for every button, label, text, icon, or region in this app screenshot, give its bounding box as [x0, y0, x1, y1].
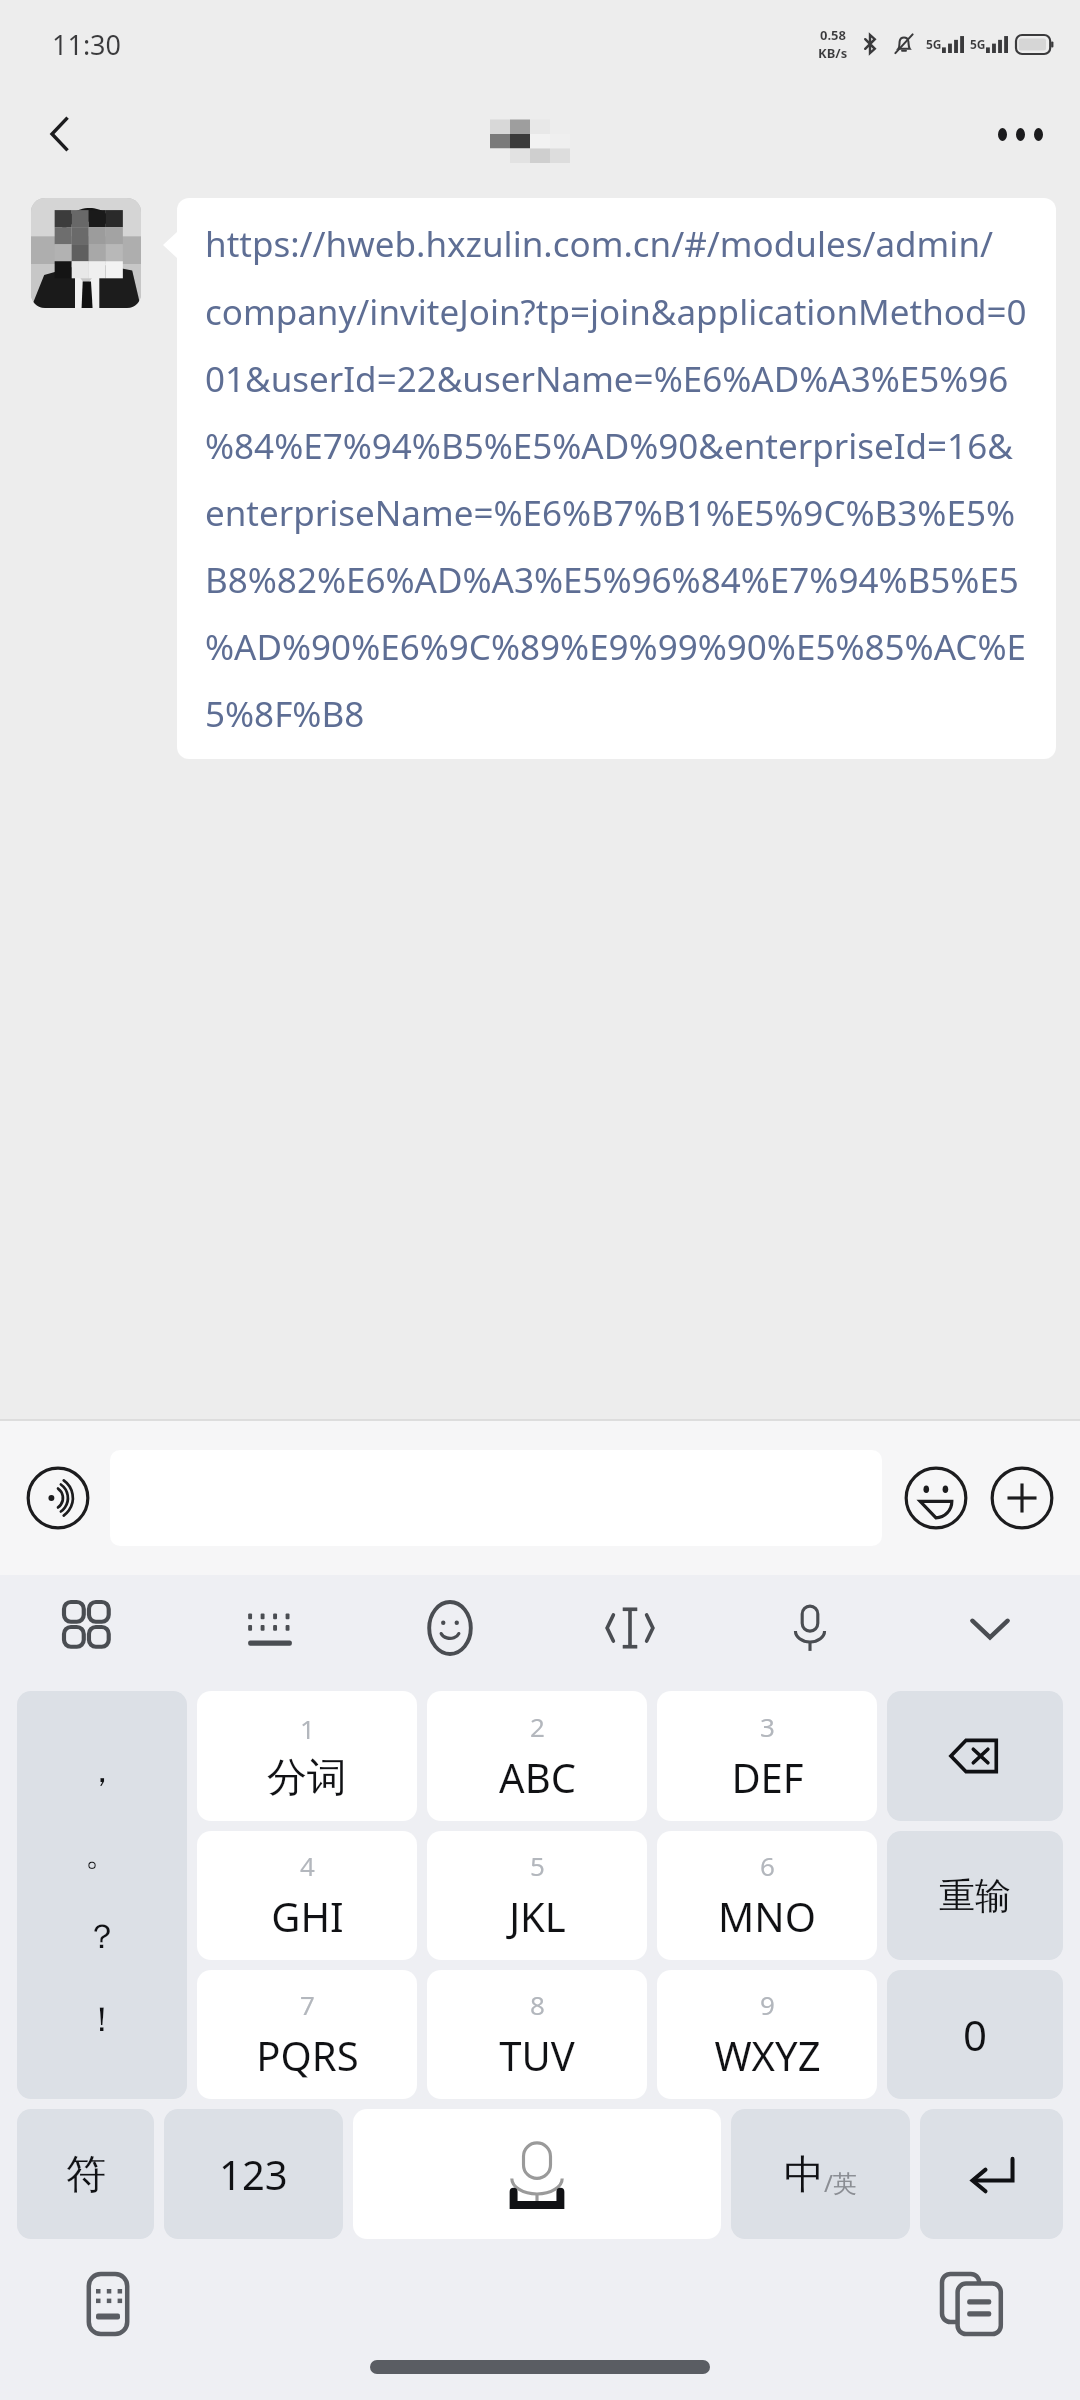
staticText: 重输 [939, 1873, 1011, 1918]
button[interactable]: 1 [197, 1691, 417, 1821]
button[interactable]: ， [17, 1691, 187, 2099]
staticText: 。 [85, 1832, 119, 1875]
button[interactable]: 9 [657, 1970, 877, 2099]
staticText: 6 [760, 1848, 775, 1883]
button[interactable] [353, 2109, 721, 2239]
button[interactable]: 2 [427, 1691, 647, 1821]
staticText: 符 [66, 2149, 106, 2199]
button[interactable]: Clipboard [934, 2266, 1010, 2342]
button[interactable] [887, 1691, 1063, 1821]
staticText: /英 [824, 2166, 857, 2199]
button[interactable]: More options [988, 102, 1052, 166]
button[interactable]: Back [28, 102, 92, 166]
staticText: 0.58 [820, 26, 846, 44]
staticText: 4 [300, 1848, 315, 1883]
staticText: 3 [760, 1709, 775, 1744]
button[interactable]: 3 [657, 1691, 877, 1821]
button[interactable]: 0 [887, 1970, 1063, 2099]
staticText: 中 [784, 2149, 824, 2199]
staticText: KB/s [818, 44, 848, 62]
staticText: 5G [970, 36, 986, 52]
staticText: JKL [509, 1889, 566, 1943]
staticText: DEF [731, 1750, 804, 1804]
staticText: 2 [530, 1709, 545, 1744]
staticText: MNO [718, 1889, 816, 1943]
button[interactable]: 123 [164, 2109, 343, 2239]
staticText: ABC [499, 1750, 576, 1804]
button[interactable]: Switch keyboard [70, 2266, 146, 2342]
staticText: PQRS [256, 2028, 359, 2082]
button[interactable]: Emoji [900, 1462, 972, 1534]
staticText: 9 [760, 1987, 775, 2022]
staticText: 5 [530, 1848, 545, 1883]
button[interactable]: 5 [427, 1831, 647, 1960]
button[interactable]: More [986, 1462, 1058, 1534]
button[interactable]: https://hweb.hxzulin.com.cn/#/modules/ad… [177, 198, 1056, 759]
button[interactable]: Voice input [22, 1462, 94, 1534]
button[interactable]: Hide keyboard [950, 1588, 1030, 1668]
button[interactable]: Voice [770, 1588, 850, 1668]
button[interactable]: 4 [197, 1831, 417, 1960]
staticText: 123 [219, 2147, 288, 2201]
button[interactable]: 中 [731, 2109, 910, 2239]
button[interactable]: 8 [427, 1970, 647, 2099]
button[interactable]: 符 [17, 2109, 154, 2239]
staticText: 7 [300, 1987, 315, 2022]
button[interactable] [920, 2109, 1063, 2239]
staticText: 0 [963, 2006, 988, 2063]
staticText: 1 [300, 1711, 315, 1746]
button[interactable]: Tools [50, 1588, 130, 1668]
staticText: 11:30 [52, 26, 122, 63]
button[interactable]: 6 [657, 1831, 877, 1960]
staticText: ？ [85, 1915, 119, 1958]
staticText: TUV [499, 2028, 575, 2082]
button[interactable]: Emoji [410, 1588, 490, 1668]
staticText: 8 [530, 1987, 545, 2022]
staticText: 分词 [267, 1752, 347, 1802]
button[interactable]: 7 [197, 1970, 417, 2099]
button[interactable]: Text edit [590, 1588, 670, 1668]
staticText: GHI [271, 1889, 344, 1943]
button[interactable]: Keyboard layout [230, 1588, 310, 1668]
staticText: ， [85, 1749, 119, 1792]
staticText: https://hweb.hxzulin.com.cn/#/modules/ad… [205, 220, 1028, 737]
staticText: 5G [926, 36, 942, 52]
staticText: WXYZ [714, 2028, 821, 2082]
button[interactable]: 重输 [887, 1831, 1063, 1960]
button[interactable]: Avatar [31, 198, 141, 308]
staticText: ！ [85, 1998, 119, 2041]
